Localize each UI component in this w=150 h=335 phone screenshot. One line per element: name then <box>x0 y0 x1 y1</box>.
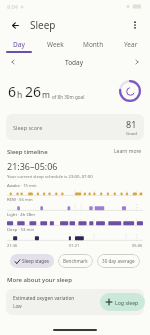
staticText: 01:21 <box>69 243 80 248</box>
staticText: Sleep <box>30 18 56 32</box>
button[interactable]: Day <box>0 37 37 51</box>
staticText: REM · 56 min <box>7 197 33 203</box>
button[interactable]: More options <box>126 16 144 34</box>
button[interactable]: Learn more <box>113 147 143 156</box>
staticText: m <box>42 89 50 101</box>
staticText: 21:36 <box>7 243 18 248</box>
button[interactable]: Back <box>6 16 24 34</box>
button[interactable]: Sleep stages <box>10 254 54 268</box>
staticText: 21:36–05:06 <box>7 160 58 172</box>
button[interactable]: Estimated oxygen variation <box>6 289 144 315</box>
button[interactable]: Week <box>37 37 74 51</box>
staticText: Sleep stages <box>22 258 49 264</box>
staticText: 6 <box>8 82 17 101</box>
staticText: Sleep score <box>13 124 43 131</box>
button[interactable]: Previous day <box>7 56 19 68</box>
staticText: Estimated oxygen variation <box>13 295 75 302</box>
staticText: Sleep timeline <box>7 148 48 156</box>
button[interactable]: Next day <box>131 56 143 68</box>
staticText: Deep · 53 min <box>7 227 35 233</box>
staticText: Day <box>13 40 25 49</box>
button[interactable]: Sleep score <box>6 114 144 140</box>
staticText: Benchmark <box>63 258 88 264</box>
button[interactable]: Log sleep <box>100 293 145 311</box>
staticText: Log sleep <box>115 299 139 306</box>
staticText: Week <box>47 40 64 49</box>
staticText: 9:04 <box>7 3 18 10</box>
staticText: 05:06 <box>132 243 143 248</box>
staticText: Awake · 15 min <box>7 183 37 189</box>
staticText: 26 <box>25 82 42 101</box>
staticText: Month <box>83 40 104 49</box>
button[interactable]: Month <box>74 37 112 51</box>
staticText: Learn more <box>114 148 142 155</box>
staticText: of 8h 30m goal <box>52 94 85 100</box>
button[interactable]: Benchmark <box>58 254 93 268</box>
button[interactable]: Year <box>112 37 150 51</box>
staticText: Today <box>65 58 84 67</box>
staticText: 30 day average <box>102 258 135 264</box>
staticText: Your current sleep schedule is 23:00–07:… <box>7 173 93 179</box>
staticText: Low <box>13 303 22 309</box>
staticText: Year <box>124 40 138 49</box>
staticText: More about your sleep <box>7 276 72 284</box>
staticText: Good <box>126 130 137 136</box>
staticText: 81 <box>126 118 137 130</box>
staticText: h <box>17 89 23 101</box>
button[interactable]: 30 day average <box>97 254 140 268</box>
staticText: Light · 4h 38m <box>7 212 36 218</box>
